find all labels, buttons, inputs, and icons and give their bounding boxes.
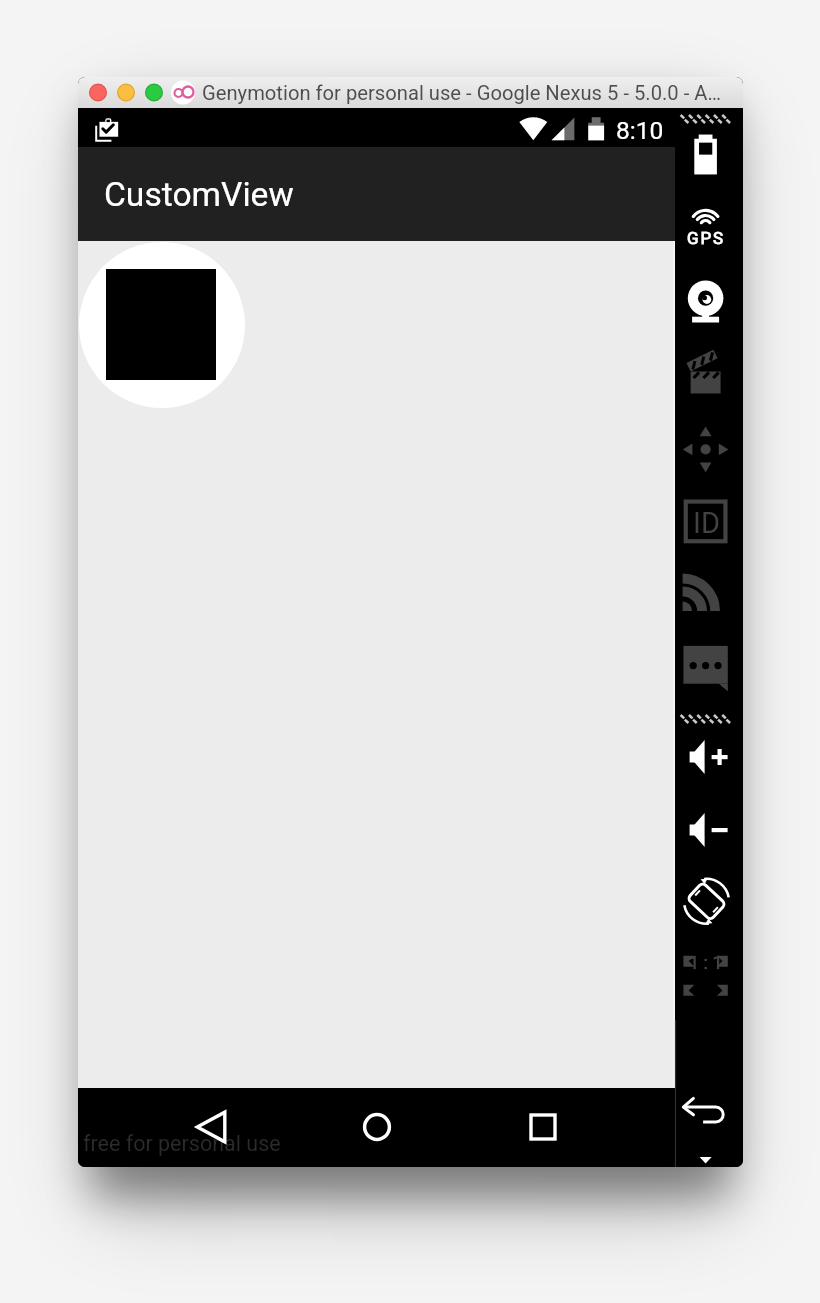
staticText: 1 : 1 <box>689 952 723 973</box>
button[interactable]: CustomView <box>78 147 675 241</box>
staticText: Genymotion for personal use - Google Nex… <box>202 81 721 105</box>
staticText: GPS <box>687 228 725 248</box>
button[interactable]: Home <box>350 1100 404 1154</box>
button[interactable]: Recents <box>516 1100 570 1154</box>
button[interactable]: Back <box>184 1100 238 1154</box>
staticText: ID <box>693 506 720 540</box>
staticText: 8:10 <box>616 116 664 145</box>
staticText: CustomView <box>104 175 294 214</box>
staticText: free for personal use <box>83 1131 281 1156</box>
button[interactable] <box>78 241 675 1088</box>
